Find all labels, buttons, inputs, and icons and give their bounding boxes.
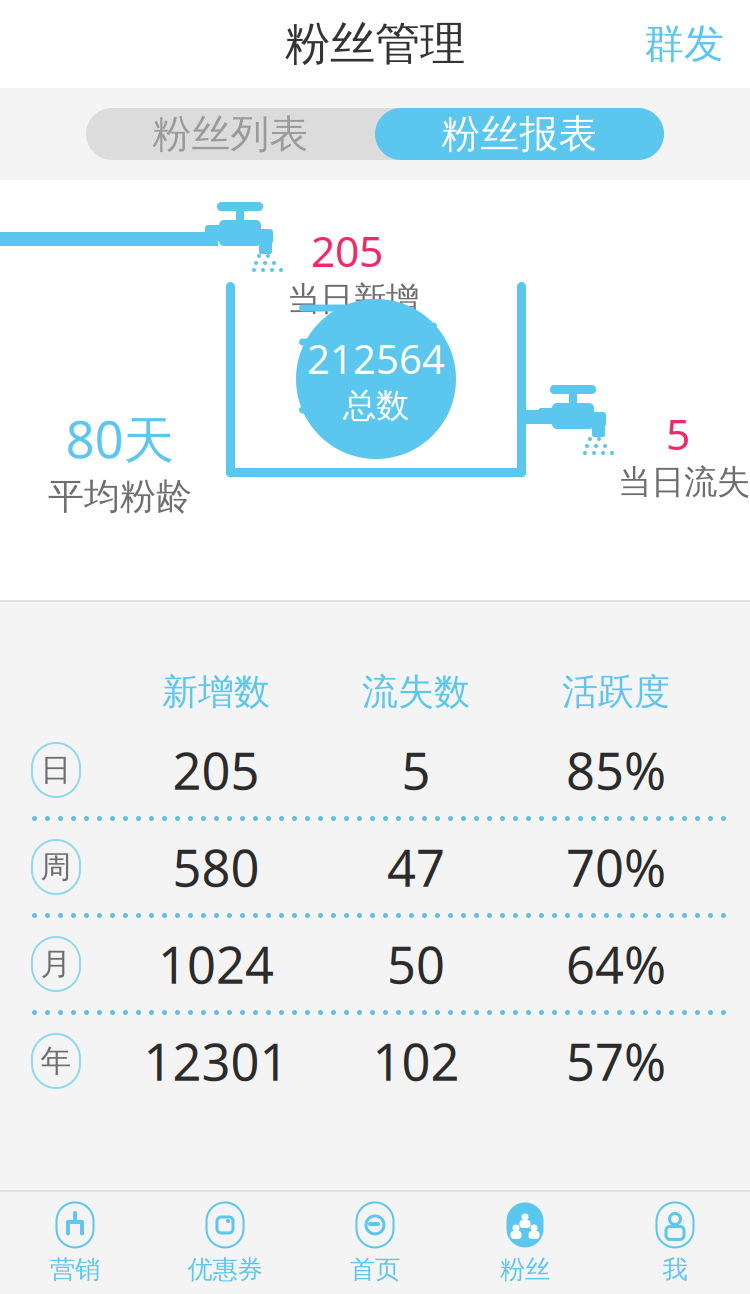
staticText: 粉丝	[500, 1254, 550, 1285]
staticText: 102	[372, 1027, 459, 1095]
staticText: 群发	[644, 19, 724, 68]
button[interactable]: 粉丝	[450, 1193, 600, 1293]
button[interactable]: 优惠券	[150, 1193, 300, 1293]
button[interactable]: 营销	[0, 1193, 150, 1293]
staticText: 47	[387, 833, 445, 901]
button[interactable]: 首页	[300, 1193, 450, 1293]
button[interactable]: 我	[600, 1193, 750, 1293]
button[interactable]: 群发	[626, 5, 750, 82]
staticText: 85%	[566, 736, 666, 804]
staticText: 1024	[158, 930, 274, 998]
staticText: 平均粉龄	[48, 474, 192, 518]
button[interactable]: 粉丝报表	[375, 108, 664, 160]
staticText: 205	[311, 222, 383, 279]
staticText: 粉丝管理	[285, 16, 465, 72]
staticText: 12301	[143, 1027, 288, 1095]
staticText: 年	[40, 1042, 71, 1080]
staticText: 当日流失	[618, 462, 750, 503]
staticText: 5	[401, 736, 430, 804]
staticText: 212564	[307, 332, 445, 385]
staticText: 我	[662, 1254, 687, 1285]
staticText: 粉丝列表	[152, 110, 308, 158]
staticText: 5	[666, 405, 690, 462]
staticText: 70%	[566, 833, 666, 901]
staticText: 营销	[50, 1254, 100, 1285]
staticText: 流失数	[362, 670, 470, 714]
staticText: 580	[172, 833, 259, 901]
staticText: 日	[40, 751, 71, 789]
staticText: 月	[40, 945, 71, 983]
staticText: 粉丝报表	[441, 110, 597, 158]
button[interactable]: 粉丝列表	[86, 108, 375, 160]
staticText: 优惠券	[187, 1254, 262, 1285]
staticText: 205	[172, 736, 259, 804]
staticText: 首页	[350, 1254, 400, 1285]
staticText: 64%	[566, 930, 666, 998]
staticText: 当日新增	[287, 279, 419, 320]
staticText: 活跃度	[562, 670, 670, 714]
staticText: 新增数	[162, 670, 270, 714]
staticText: 总数	[343, 385, 409, 426]
staticText: 50	[387, 930, 445, 998]
staticText: 80天	[65, 405, 174, 472]
staticText: 周	[40, 848, 71, 886]
staticText: 57%	[566, 1027, 666, 1095]
